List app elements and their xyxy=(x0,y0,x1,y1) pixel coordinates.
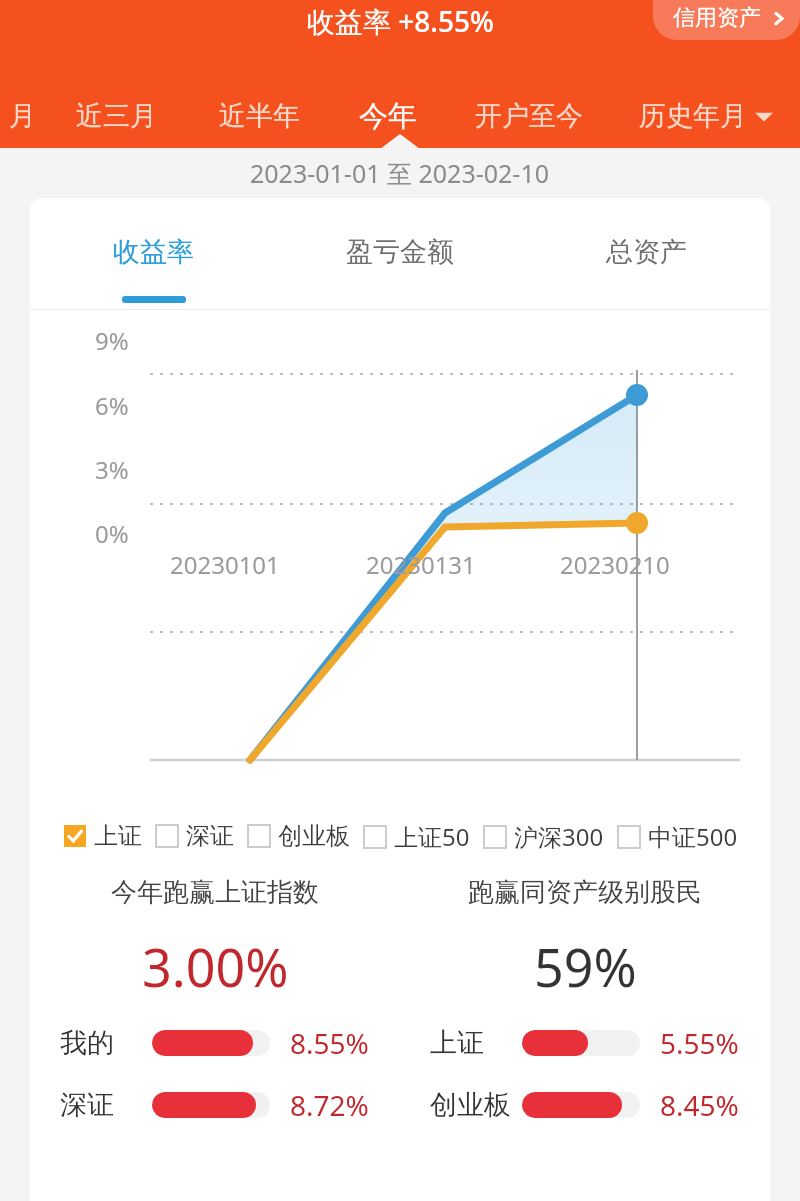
button[interactable]: 历史年月 xyxy=(612,84,800,148)
staticText: 20230101 xyxy=(170,548,280,581)
staticText: 总资产 xyxy=(606,235,687,269)
staticText: 信用资产 xyxy=(673,4,761,32)
staticText: 8.45% xyxy=(660,1086,739,1124)
button[interactable]: 我的 xyxy=(30,1012,400,1074)
staticText: 20230131 xyxy=(366,548,476,581)
button[interactable]: 近半年 xyxy=(188,84,330,148)
button[interactable]: 盈亏金额 xyxy=(276,198,523,306)
staticText: 我的 xyxy=(60,1026,114,1060)
staticText: 近三月 xyxy=(76,99,157,133)
staticText: 收益率 +8.55% xyxy=(307,2,494,40)
button[interactable]: 创业板 xyxy=(400,1074,770,1136)
button[interactable]: 今年 xyxy=(330,84,446,148)
staticText: 59% xyxy=(534,931,637,1002)
button[interactable]: 沪深300 xyxy=(484,820,618,853)
button[interactable]: 中证500 xyxy=(618,820,752,853)
staticText: 今年 xyxy=(359,98,417,135)
button[interactable]: 开户至今 xyxy=(446,84,612,148)
staticText: 盈亏金额 xyxy=(346,235,454,269)
staticText: 上证50 xyxy=(394,820,470,853)
staticText: 深证 xyxy=(186,821,234,851)
button[interactable]: 信用资产 xyxy=(653,0,800,40)
staticText: 创业板 xyxy=(430,1088,511,1122)
staticText: 9% xyxy=(95,324,129,357)
staticText: 跑赢同资产级别股民 xyxy=(468,876,702,909)
staticText: 0% xyxy=(95,517,129,550)
staticText: 3% xyxy=(95,453,129,486)
button[interactable]: 深证 xyxy=(156,821,248,851)
staticText: 中证500 xyxy=(648,820,738,853)
staticText: 20230210 xyxy=(560,548,670,581)
button[interactable]: 月 xyxy=(0,84,44,148)
button[interactable]: 上证 xyxy=(64,821,156,851)
button[interactable]: 创业板 xyxy=(248,821,364,851)
staticText: 2023-01-01 至 2023-02-10 xyxy=(250,156,550,190)
staticText: 创业板 xyxy=(278,821,350,851)
button[interactable]: 上证50 xyxy=(364,820,484,853)
staticText: 近半年 xyxy=(219,99,300,133)
staticText: 深证 xyxy=(60,1088,114,1122)
staticText: 今年跑赢上证指数 xyxy=(111,876,319,909)
staticText: 沪深300 xyxy=(514,820,604,853)
staticText: 上证 xyxy=(430,1026,484,1060)
staticText: 8.72% xyxy=(290,1086,369,1124)
staticText: 历史年月 xyxy=(639,99,747,133)
staticText: 5.55% xyxy=(660,1024,739,1062)
staticText: 3.00% xyxy=(142,931,289,1002)
button[interactable]: 收益率 xyxy=(30,198,276,306)
button[interactable]: 总资产 xyxy=(523,198,770,306)
button[interactable]: 上证 xyxy=(400,1012,770,1074)
staticText: 收益率 xyxy=(113,235,194,269)
staticText: 6% xyxy=(95,389,129,422)
staticText: 月 xyxy=(9,99,36,133)
staticText: 上证 xyxy=(94,821,142,851)
button[interactable]: 深证 xyxy=(30,1074,400,1136)
staticText: 8.55% xyxy=(290,1024,369,1062)
staticText: 开户至今 xyxy=(475,99,583,133)
button[interactable]: 近三月 xyxy=(44,84,188,148)
